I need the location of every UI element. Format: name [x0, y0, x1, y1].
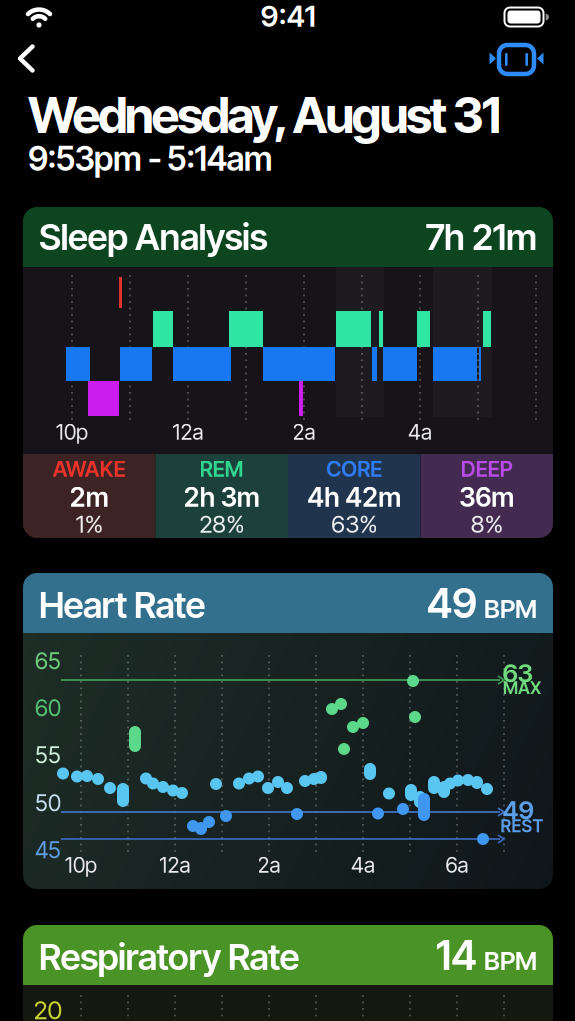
staticText: Sleep Analysis: [39, 216, 267, 258]
staticText: Heart Rate: [39, 584, 205, 626]
staticText: 9:41: [260, 0, 315, 33]
staticText: BPM: [484, 946, 537, 976]
staticText: 20: [33, 995, 62, 1021]
staticText: 2m: [70, 481, 109, 513]
staticText: 12a: [159, 852, 190, 878]
staticText: 63: [502, 658, 533, 688]
staticText: 49: [426, 579, 477, 627]
button[interactable]: Back: [14, 43, 48, 75]
staticText: 1%: [76, 510, 103, 538]
staticText: CORE: [326, 456, 382, 482]
staticText: MAX: [503, 678, 541, 698]
staticText: 63%: [331, 510, 377, 538]
staticText: 10p: [56, 419, 88, 445]
staticText: 6a: [445, 852, 468, 878]
staticText: 36m: [459, 481, 514, 513]
staticText: 2h 3m: [184, 481, 260, 513]
staticText: REM: [200, 456, 244, 482]
staticText: 7h 21m: [425, 216, 537, 258]
staticText: DEEP: [461, 456, 513, 482]
staticText: Respiratory Rate: [39, 936, 299, 978]
staticText: 2a: [257, 852, 280, 878]
staticText: AWAKE: [53, 456, 126, 482]
staticText: Wednesday, August 31: [28, 86, 501, 144]
staticText: 9:53pm - 5:14am: [28, 139, 273, 178]
staticText: 45: [35, 837, 61, 863]
staticText: 4a: [408, 419, 432, 445]
staticText: 4a: [351, 852, 375, 878]
staticText: 49: [502, 795, 533, 825]
staticText: 12a: [172, 419, 203, 445]
staticText: 60: [35, 695, 61, 721]
staticText: 8%: [471, 510, 503, 538]
staticText: 10p: [65, 852, 97, 878]
staticText: 55: [35, 742, 61, 768]
button[interactable]: Watch: [486, 44, 544, 76]
staticText: 50: [35, 790, 61, 816]
staticText: REST: [500, 816, 543, 836]
staticText: 4h 42m: [307, 481, 401, 513]
staticText: BPM: [484, 594, 537, 624]
staticText: 2a: [292, 419, 315, 445]
staticText: 14: [435, 931, 477, 979]
staticText: 65: [35, 648, 61, 674]
staticText: 28%: [199, 510, 244, 538]
